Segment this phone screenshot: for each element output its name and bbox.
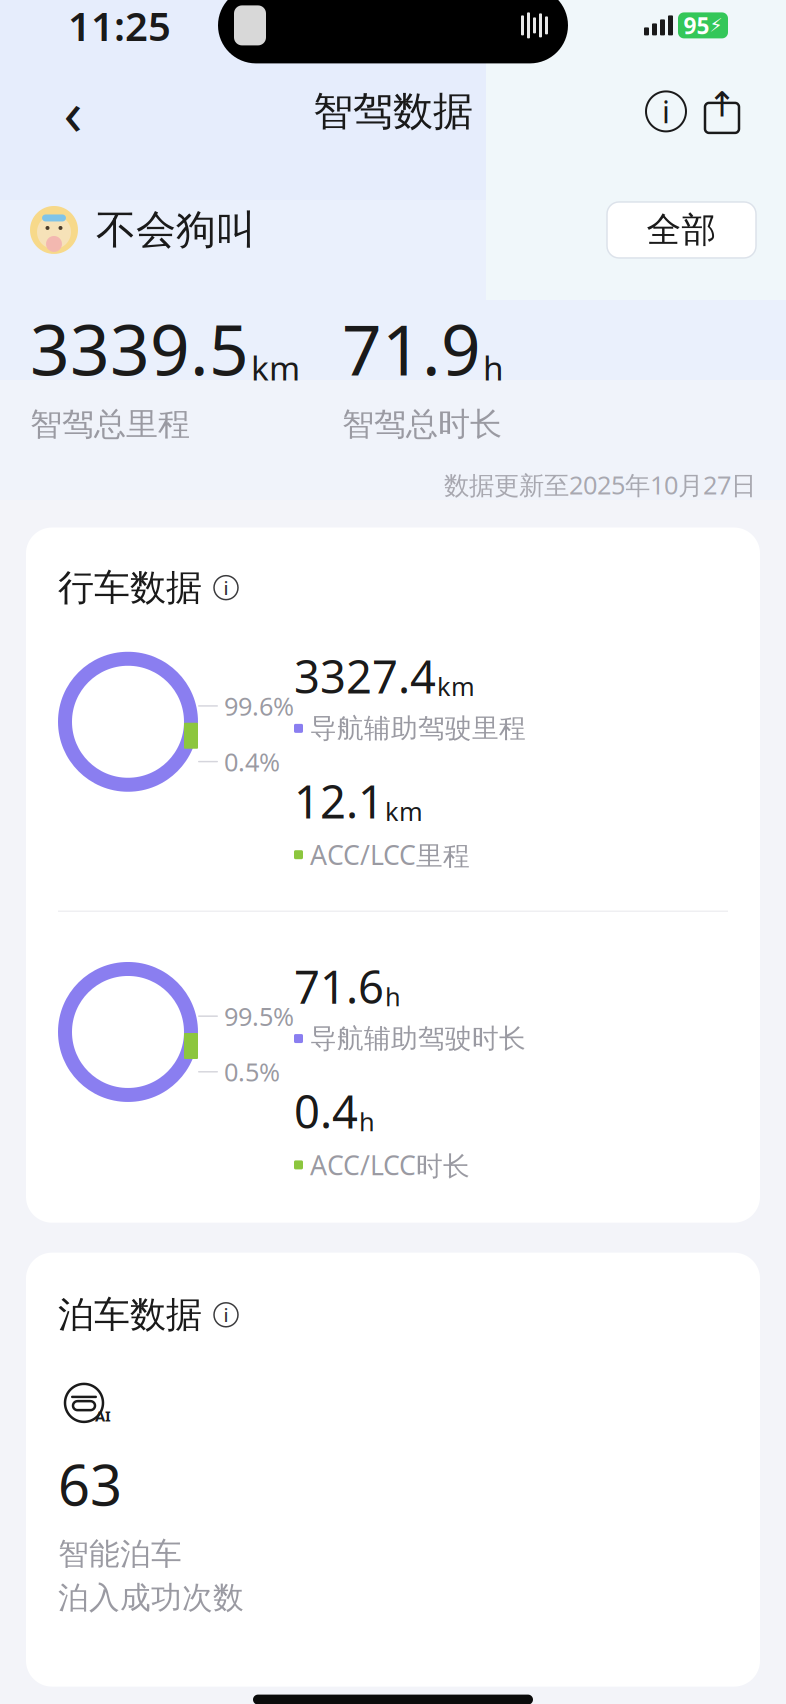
staticText: 11:25 bbox=[68, 0, 171, 52]
staticText: km bbox=[251, 345, 300, 390]
staticText: 不会狗叫 bbox=[96, 205, 256, 254]
staticText: 99.5% bbox=[224, 999, 294, 1033]
staticText: ↑ bbox=[707, 85, 736, 124]
staticText: 智驾总时长 bbox=[342, 405, 502, 444]
staticText: 3339.5 bbox=[30, 302, 249, 395]
button[interactable]: 分享 bbox=[694, 83, 750, 139]
staticText: 71.6 bbox=[294, 956, 384, 1016]
staticText: 63 bbox=[58, 1447, 122, 1521]
staticText: 导航辅助驾驶时长 bbox=[310, 1022, 526, 1055]
button[interactable]: 说明 bbox=[638, 83, 694, 139]
staticText: 数据更新至2025年10月27日 bbox=[444, 468, 756, 501]
staticText: h bbox=[359, 1104, 375, 1138]
button[interactable]: 返回 bbox=[42, 80, 104, 142]
staticText: 99.6% bbox=[224, 689, 294, 723]
staticText: km bbox=[385, 794, 423, 828]
staticText: 导航辅助驾驶里程 bbox=[310, 712, 526, 745]
staticText: 智驾总里程 bbox=[30, 405, 190, 444]
staticText: 0.4% bbox=[224, 745, 280, 778]
button[interactable]: 全部 bbox=[607, 202, 756, 258]
staticText: 0.5% bbox=[224, 1055, 280, 1089]
staticText: i bbox=[223, 575, 228, 600]
staticText: 0.4 bbox=[294, 1081, 358, 1141]
staticText: ACC/LCC时长 bbox=[310, 1147, 470, 1183]
staticText: i bbox=[223, 1302, 228, 1327]
staticText: 3327.4 bbox=[294, 646, 436, 706]
staticText: ‹ bbox=[63, 71, 82, 152]
staticText: 全部 bbox=[646, 209, 716, 251]
staticText: 智驾数据 bbox=[313, 87, 473, 136]
staticText: ACC/LCC里程 bbox=[310, 837, 470, 872]
staticText: 智能泊车 bbox=[58, 1535, 182, 1573]
staticText: i bbox=[662, 91, 670, 132]
staticText: 95 bbox=[683, 10, 709, 40]
staticText: h bbox=[385, 979, 401, 1013]
staticText: km bbox=[437, 669, 475, 703]
staticText: 泊车数据 bbox=[58, 1293, 202, 1337]
button[interactable]: 不会狗叫 bbox=[30, 199, 256, 260]
staticText: 12.1 bbox=[294, 771, 384, 831]
staticText: 泊入成功次数 bbox=[58, 1579, 244, 1617]
staticText: h bbox=[483, 345, 504, 390]
staticText: ⚡︎ bbox=[709, 15, 722, 36]
staticText: 行车数据 bbox=[58, 565, 202, 610]
staticText: AI bbox=[95, 1406, 111, 1426]
staticText: 71.9 bbox=[342, 302, 481, 395]
button[interactable]: 关于行车数据 bbox=[212, 574, 240, 602]
button[interactable]: 关于泊车数据 bbox=[212, 1301, 240, 1329]
